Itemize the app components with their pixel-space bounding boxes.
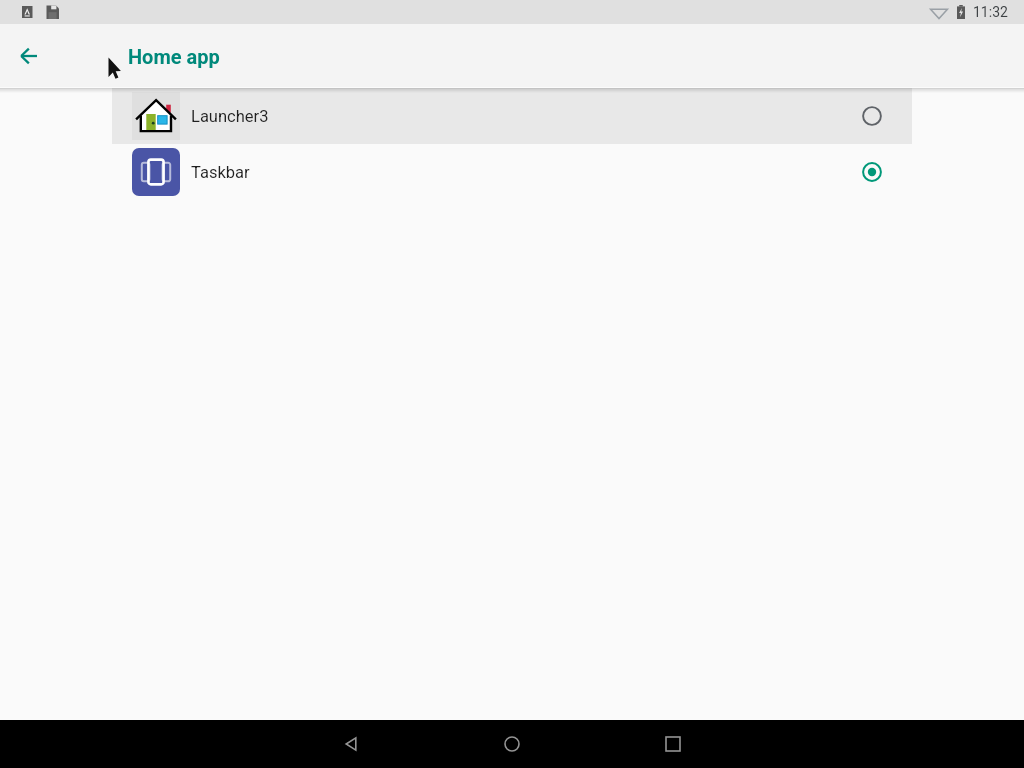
button[interactable]: Back	[327, 720, 375, 768]
staticText: Launcher3	[191, 107, 269, 126]
button[interactable]: Taskbar	[112, 144, 912, 200]
staticText: 11:32	[973, 4, 1008, 20]
button[interactable]: Recent apps	[649, 720, 697, 768]
button[interactable]: Select Launcher3	[852, 96, 892, 136]
button[interactable]: Back	[4, 32, 52, 80]
button[interactable]: Select Taskbar	[852, 152, 892, 192]
button[interactable]: Launcher3	[112, 88, 912, 144]
staticText: Home app	[128, 45, 220, 68]
staticText: Taskbar	[191, 163, 250, 182]
button[interactable]: Home	[488, 720, 536, 768]
